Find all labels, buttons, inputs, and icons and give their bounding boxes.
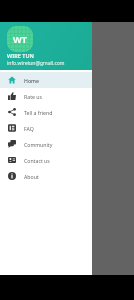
button[interactable]: FAQ [0, 120, 92, 136]
staticText: FAQ [24, 125, 34, 132]
button[interactable]: Contact us [0, 152, 92, 168]
button[interactable] [12, 50, 117, 66]
button[interactable]: Rate us [0, 88, 92, 104]
staticText: WIRE TUN [7, 52, 34, 59]
button[interactable]: About [0, 168, 92, 184]
button[interactable]: Close navigation drawer [0, 22, 134, 275]
staticText: About [24, 173, 39, 180]
staticText: WT [13, 33, 27, 45]
staticText: Contact us [24, 157, 50, 164]
staticText: info.wiretun@gmail.com [7, 60, 65, 67]
staticText: Tell a friend [24, 109, 53, 116]
staticText: Community [24, 141, 53, 148]
button[interactable]: WT [0, 22, 92, 70]
staticText: Rate us [24, 93, 42, 100]
staticText: Home [24, 77, 39, 84]
button[interactable]: Community [0, 136, 92, 152]
button[interactable]: Home [0, 72, 92, 88]
button[interactable]: Tell a friend [0, 104, 92, 120]
